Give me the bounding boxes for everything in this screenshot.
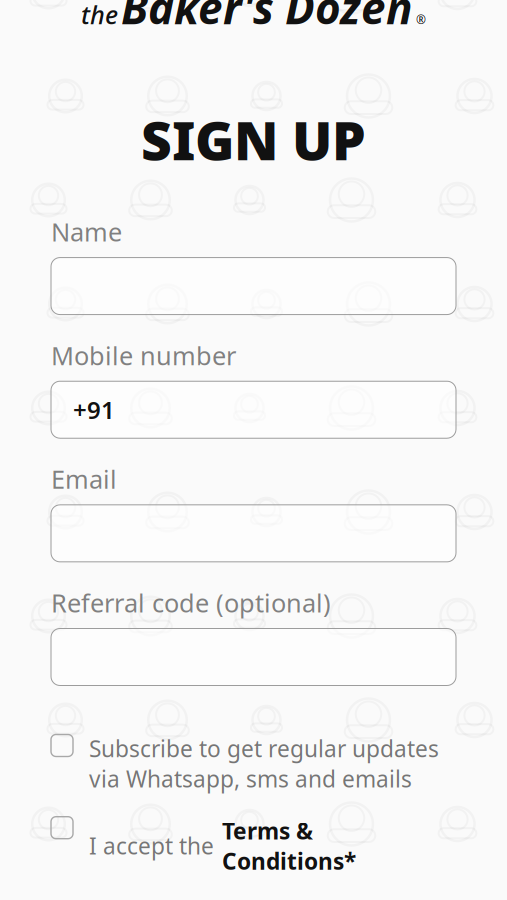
staticText: Subscribe to get regular updates via Wha…	[89, 733, 439, 794]
button[interactable]	[51, 505, 456, 562]
staticText: the	[81, 0, 118, 31]
staticText: Email	[51, 462, 117, 496]
button[interactable]: I accept the	[51, 816, 456, 876]
staticText: ®	[416, 11, 426, 27]
staticText: Name	[51, 215, 122, 248]
button[interactable]: Subscribe to get regular updates via Wha…	[51, 733, 456, 794]
staticText: Mobile number	[51, 339, 236, 372]
button[interactable]: +91	[51, 381, 456, 438]
staticText: SIGN UP	[141, 104, 366, 175]
staticText: Terms & Conditions*	[222, 816, 356, 876]
staticText: I accept the	[89, 831, 214, 861]
button[interactable]	[51, 258, 456, 315]
staticText: Baker's Dozen	[121, 0, 413, 36]
button[interactable]	[51, 628, 456, 685]
staticText: +91	[73, 394, 115, 426]
staticText: Referral code (optional)	[51, 586, 331, 619]
